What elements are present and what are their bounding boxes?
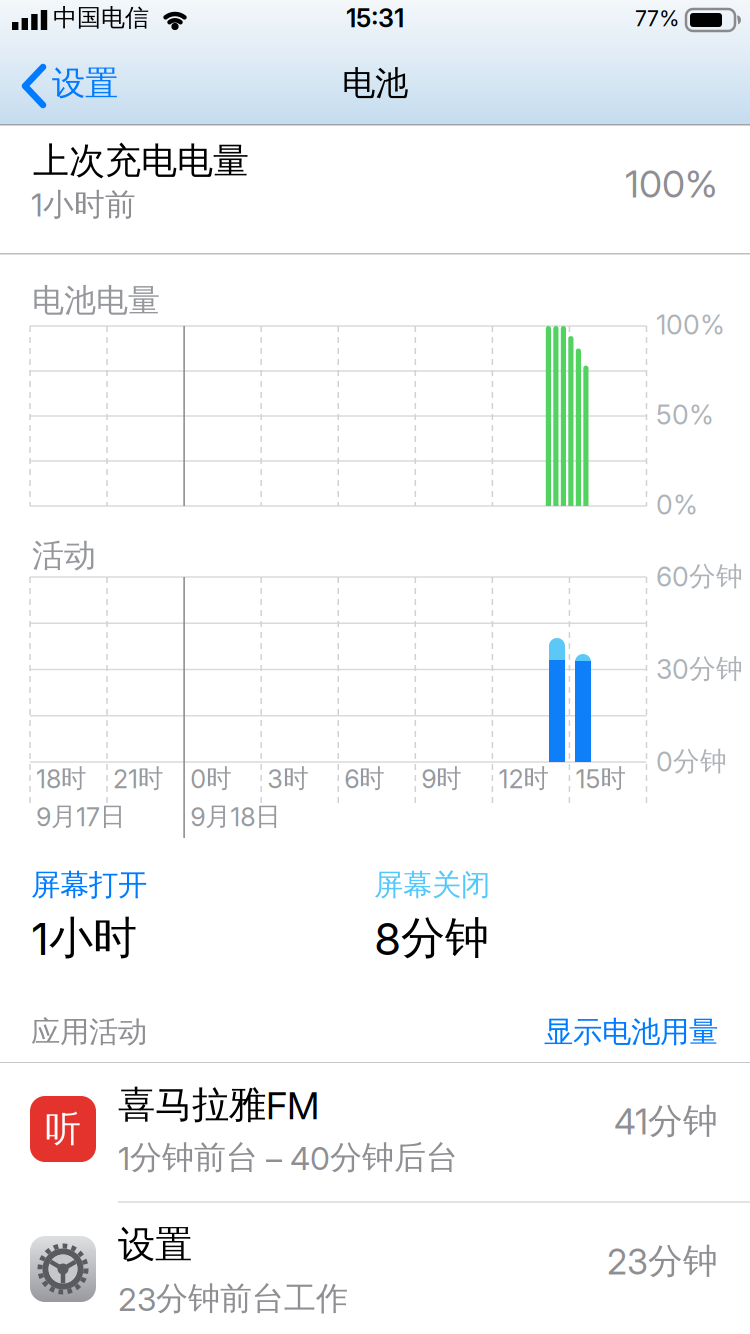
staticText: 1分钟前台 – 40分钟后台 [118, 1138, 458, 1177]
staticText: 应用活动 [31, 1014, 147, 1050]
staticText: 上次充电电量 [33, 139, 249, 183]
staticText: 6时 [344, 763, 384, 794]
staticText: 8分钟 [374, 911, 489, 965]
staticText: 喜马拉雅FM [118, 1082, 319, 1128]
staticText: 设置 [118, 1222, 192, 1268]
staticText: 23分钟前台工作 [118, 1279, 348, 1318]
button[interactable]: 显示电池用量 [544, 1014, 718, 1050]
staticText: 设置 [52, 63, 118, 104]
staticText: 9时 [421, 763, 461, 794]
staticText: 30分钟 [656, 652, 743, 685]
staticText: 屏幕打开 [31, 867, 147, 903]
staticText: 0时 [190, 763, 231, 794]
staticText: 100% [656, 309, 725, 340]
staticText: 9月18日 [190, 801, 280, 832]
staticText: 中国电信 [53, 3, 149, 32]
button[interactable]: 听 [0, 1063, 750, 1202]
staticText: 听 [45, 1107, 81, 1151]
button[interactable]: 设置 [0, 1203, 750, 1334]
staticText: 41分钟 [614, 1100, 718, 1143]
staticText: 活动 [32, 536, 96, 575]
staticText: 50% [656, 399, 714, 430]
staticText: 77% [635, 6, 680, 31]
staticText: 60分钟 [656, 560, 743, 593]
staticText: 显示电池用量 [544, 1014, 718, 1050]
staticText: 电池 [342, 63, 408, 104]
staticText: 1小时 [31, 911, 137, 965]
staticText: 电池电量 [32, 281, 160, 320]
staticText: 21时 [113, 763, 163, 794]
staticText: 9月17日 [36, 801, 125, 832]
staticText: 0% [656, 489, 698, 520]
staticText: 3时 [267, 763, 308, 794]
button[interactable]: 设置 [18, 63, 178, 113]
staticText: 23分钟 [607, 1240, 718, 1283]
staticText: 1小时前 [31, 186, 136, 224]
staticText: 0分钟 [656, 745, 727, 778]
staticText: 100% [625, 162, 718, 206]
staticText: 18时 [36, 763, 86, 794]
staticText: 屏幕关闭 [374, 867, 490, 903]
staticText: 15时 [575, 763, 625, 794]
staticText: 15:31 [346, 3, 404, 33]
staticText: 12时 [498, 763, 548, 794]
